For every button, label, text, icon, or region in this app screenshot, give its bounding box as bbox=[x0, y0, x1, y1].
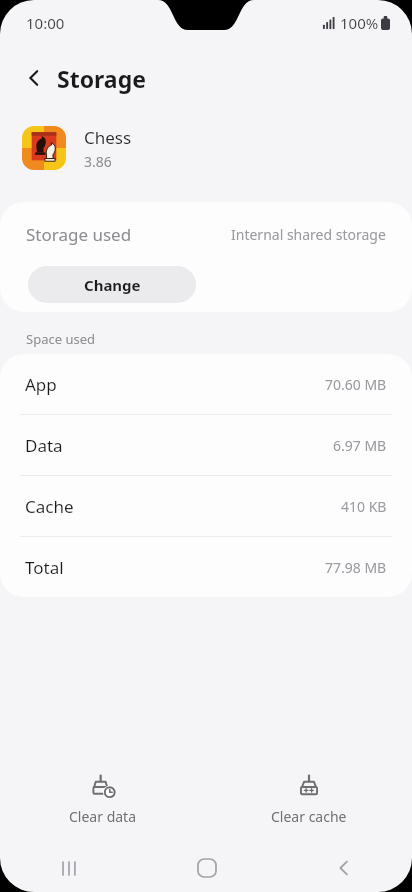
staticText: Storage used bbox=[26, 223, 132, 246]
staticText: Space used bbox=[26, 330, 95, 348]
staticText: Storage bbox=[57, 63, 146, 94]
staticText: Clear data bbox=[69, 807, 137, 826]
button[interactable]: App bbox=[0, 354, 412, 414]
staticText: 77.98 MB bbox=[325, 558, 387, 577]
button[interactable]: Cache bbox=[0, 476, 412, 536]
button[interactable]: Data bbox=[0, 415, 412, 475]
button[interactable]: Recent apps bbox=[0, 844, 138, 892]
button[interactable]: Back bbox=[12, 56, 56, 100]
staticText: Chess bbox=[84, 126, 132, 149]
staticText: 10:00 bbox=[26, 13, 65, 33]
staticText: App bbox=[25, 373, 57, 396]
staticText: Internal shared storage bbox=[231, 225, 386, 244]
button[interactable]: Total bbox=[0, 537, 412, 597]
button[interactable]: Change bbox=[28, 266, 196, 303]
button[interactable]: Home bbox=[138, 844, 275, 892]
staticText: 100% bbox=[340, 13, 379, 33]
staticText: 6.97 MB bbox=[333, 436, 387, 455]
button[interactable]: Back bbox=[275, 844, 412, 892]
button[interactable]: Clear data bbox=[0, 762, 206, 826]
staticText: 410 KB bbox=[341, 497, 387, 516]
staticText: Change bbox=[84, 275, 141, 295]
staticText: 70.60 MB bbox=[325, 375, 387, 394]
staticText: 3.86 bbox=[84, 152, 112, 171]
staticText: Cache bbox=[25, 495, 74, 518]
staticText: Data bbox=[25, 434, 63, 457]
staticText: Clear cache bbox=[271, 807, 347, 826]
staticText: Total bbox=[25, 556, 64, 579]
button[interactable]: Clear cache bbox=[206, 762, 412, 826]
